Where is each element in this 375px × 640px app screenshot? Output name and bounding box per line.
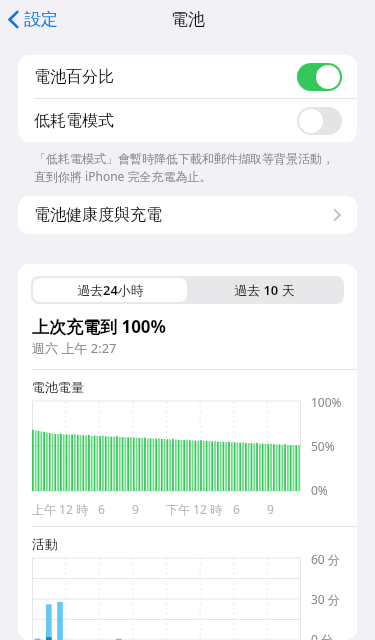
staticText: 電池健康度與充電 [34,205,333,225]
button[interactable]: 過去 10 天 [187,278,342,302]
button[interactable]: 電池百分比 [18,55,357,98]
staticText: 「低耗電模式」會暫時降低下載和郵件擷取等背景活動， [34,151,334,166]
staticText: 電池 [171,9,205,30]
staticText: 上次充電到 100% [32,315,166,338]
button[interactable]: 電池健康度與充電 [18,196,357,234]
staticText: 直到你將 iPhone 完全充電為止。 [34,168,212,184]
staticText: 過去24小時 [77,281,144,299]
button[interactable]: 低耗電模式 [18,99,357,142]
staticText: 電池電量 [32,379,84,395]
staticText: 60 分 [311,551,340,567]
staticText: 9 [267,501,274,517]
button[interactable]: 設定 [0,5,66,34]
staticText: 9 [132,501,139,517]
staticText: 低耗電模式 [34,111,297,131]
staticText: 過去 10 天 [234,281,295,299]
staticText: 6 [98,501,105,517]
staticText: 上午 12 時 [32,501,88,517]
staticText: 電池百分比 [34,67,297,87]
button[interactable]: Toggle off [297,107,342,135]
staticText: 週六 上午 2:27 [32,339,117,357]
button[interactable]: 過去24小時 [33,278,187,302]
staticText: 活動 [32,536,58,552]
staticText: 30 分 [311,591,340,607]
staticText: 0 分 [311,631,333,640]
button[interactable]: Toggle on [297,63,342,91]
staticText: 設定 [24,9,58,30]
staticText: 0% [311,482,328,498]
staticText: 下午 12 時 [166,501,222,517]
staticText: 100% [311,394,342,410]
staticText: 50% [311,438,335,454]
staticText: 6 [233,501,240,517]
